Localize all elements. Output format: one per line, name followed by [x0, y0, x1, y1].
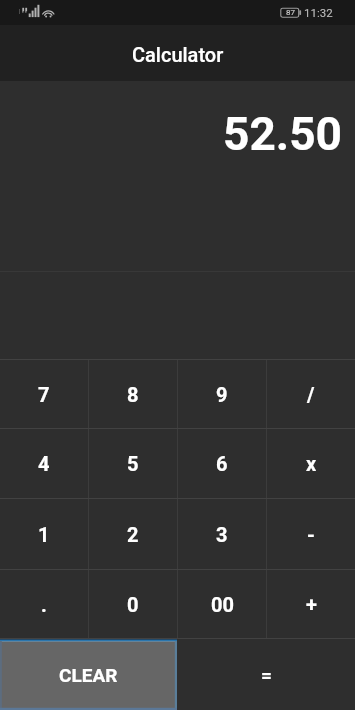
staticText: 4: [38, 452, 50, 475]
button[interactable]: 1: [0, 499, 88, 569]
button[interactable]: 8: [89, 360, 177, 428]
button[interactable]: CLEAR: [0, 639, 177, 710]
staticText: 6: [216, 452, 228, 475]
button[interactable]: 2: [89, 499, 177, 569]
staticText: 7: [38, 383, 50, 406]
staticText: 3: [216, 523, 228, 546]
staticText: 2: [127, 523, 139, 546]
button[interactable]: -: [267, 499, 355, 569]
button[interactable]: 7: [0, 360, 88, 428]
button[interactable]: 3: [178, 499, 266, 569]
button[interactable]: 5: [89, 429, 177, 498]
staticText: =: [261, 664, 272, 686]
button[interactable]: +: [267, 570, 355, 638]
button[interactable]: 00: [178, 570, 266, 638]
button[interactable]: 4: [0, 429, 88, 498]
button[interactable]: 0: [89, 570, 177, 638]
staticText: 11:32: [304, 6, 333, 19]
button[interactable]: 6: [178, 429, 266, 498]
staticText: .: [41, 593, 47, 616]
staticText: /: [307, 383, 315, 406]
staticText: Calculator: [132, 43, 224, 66]
staticText: 5: [127, 452, 139, 475]
button[interactable]: 9: [178, 360, 266, 428]
staticText: 8: [127, 383, 139, 406]
button[interactable]: x: [267, 429, 355, 498]
button[interactable]: .: [0, 570, 88, 638]
button[interactable]: /: [267, 360, 355, 428]
staticText: +: [306, 593, 317, 616]
staticText: 52.50: [223, 107, 342, 161]
staticText: CLEAR: [59, 664, 118, 686]
button[interactable]: =: [177, 639, 355, 710]
staticText: 87: [286, 8, 295, 17]
staticText: -: [307, 523, 315, 546]
staticText: 9: [216, 383, 228, 406]
staticText: 0: [127, 593, 139, 616]
staticText: 1: [38, 523, 50, 546]
staticText: x: [306, 452, 317, 475]
staticText: 00: [211, 593, 234, 616]
